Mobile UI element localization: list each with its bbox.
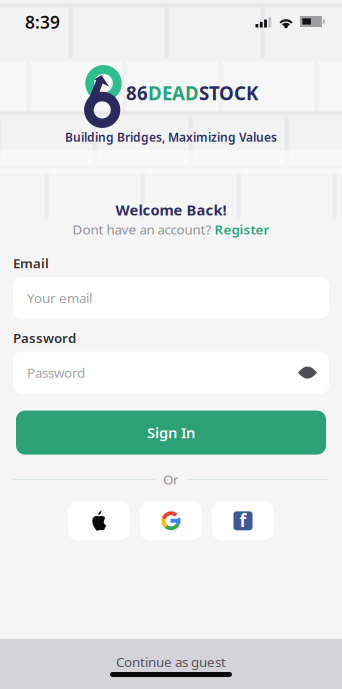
button[interactable]: Show password bbox=[298, 366, 317, 380]
staticText: Password bbox=[27, 364, 85, 381]
staticText: Dont have an account? bbox=[72, 220, 211, 238]
staticText: 86 bbox=[126, 81, 148, 105]
staticText: Continue as guest bbox=[116, 653, 226, 671]
staticText: f bbox=[239, 509, 246, 532]
button[interactable]: Continue as guest bbox=[0, 639, 342, 689]
button[interactable]: Sign In bbox=[16, 411, 326, 455]
button[interactable]: Register bbox=[214, 220, 269, 238]
button[interactable]: Sign in with Google bbox=[140, 501, 202, 540]
staticText: Register bbox=[214, 220, 269, 238]
staticText: Or bbox=[163, 471, 179, 488]
staticText: STOCK bbox=[199, 81, 258, 105]
staticText: DEAD bbox=[148, 81, 199, 105]
staticText: Sign In bbox=[147, 423, 195, 442]
staticText: Welcome Back! bbox=[115, 200, 226, 219]
staticText: Building Bridges, Maximizing Values bbox=[65, 129, 277, 145]
staticText: 8:39 bbox=[25, 10, 60, 33]
button[interactable]: Sign in with Facebook bbox=[212, 501, 274, 540]
button[interactable]: Sign in with Apple bbox=[68, 501, 130, 540]
staticText: Email bbox=[13, 254, 49, 272]
staticText: Your email bbox=[27, 289, 92, 307]
staticText: Password bbox=[13, 329, 76, 347]
